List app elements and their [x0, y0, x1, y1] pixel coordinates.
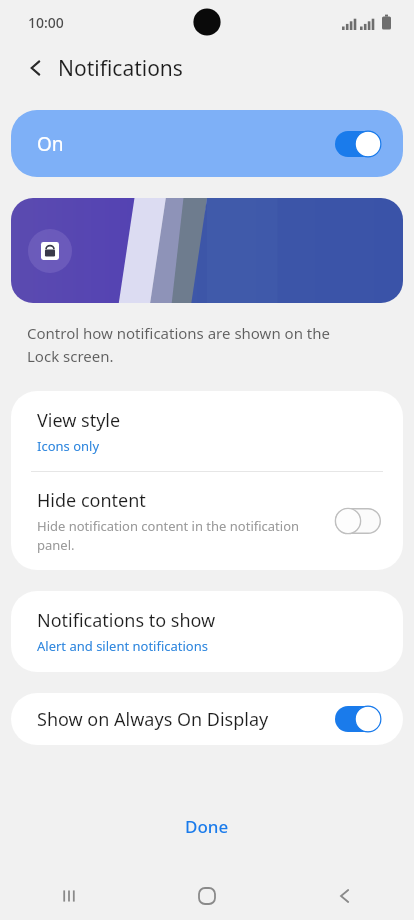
staticText: Notifications: [58, 54, 183, 83]
button[interactable]: Recents: [0, 872, 138, 920]
button[interactable]: Lock screen: [28, 229, 72, 273]
button[interactable]: Home: [138, 872, 276, 920]
staticText: Notifications to show: [37, 608, 216, 633]
button[interactable]: View style: [11, 391, 403, 471]
button[interactable]: Hide content: [11, 472, 403, 570]
button[interactable]: On: [11, 110, 403, 177]
staticText: Control how notifications are shown on t…: [27, 323, 330, 366]
staticText: Alert and silent notifications: [37, 637, 208, 655]
staticText: Hide content: [37, 488, 146, 513]
button[interactable]: Show on Always On Display: [11, 693, 403, 745]
button[interactable]: Back: [276, 872, 414, 920]
button[interactable]: Back: [16, 48, 56, 88]
staticText: Done: [185, 815, 229, 838]
staticText: Icons only: [37, 437, 100, 455]
button[interactable]: Lock screen: [11, 198, 403, 303]
staticText: Show on Always On Display: [37, 707, 269, 732]
staticText: On: [37, 131, 64, 157]
button[interactable]: Notifications to show: [11, 591, 403, 672]
button[interactable]: Done: [161, 807, 253, 846]
staticText: 10:00: [28, 13, 64, 32]
staticText: Hide notification content in the notific…: [37, 517, 321, 554]
staticText: View style: [37, 408, 121, 433]
